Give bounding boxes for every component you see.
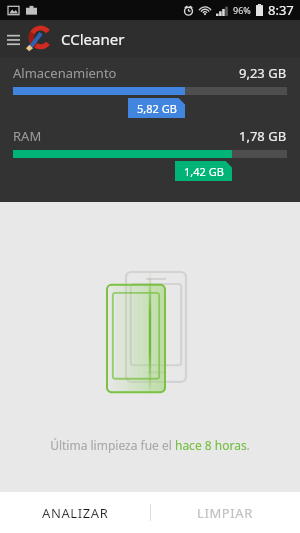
staticText: CCleaner (61, 29, 125, 49)
staticText: Almacenamiento (13, 64, 117, 82)
button[interactable]: Almacenamiento (0, 64, 300, 118)
staticText: ANALIZAR (42, 504, 109, 522)
button[interactable]: ANALIZAR (0, 492, 150, 533)
staticText: RAM (13, 127, 42, 145)
staticText: 9,23 GB (239, 64, 287, 82)
button[interactable]: RAM (0, 127, 300, 181)
button[interactable]: Open navigation menu (2, 28, 24, 50)
staticText: 96% (233, 4, 251, 16)
staticText: 1,42 GB (184, 164, 224, 179)
button[interactable]: LIMPIAR (150, 492, 300, 533)
staticText: 5,82 GB (137, 101, 177, 116)
staticText: LIMPIAR (197, 504, 253, 522)
staticText: 8:37 (268, 1, 294, 19)
staticText: 1,78 GB (239, 127, 287, 145)
staticText: Última limpieza fue el hace 8 horas. (50, 437, 250, 453)
button[interactable]: Última limpieza fue el hace 8 horas. (0, 437, 300, 453)
